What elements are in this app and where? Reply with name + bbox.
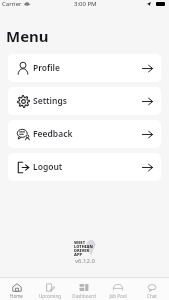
- button[interactable]: Profile: [8, 54, 161, 82]
- staticText: Home: [10, 293, 23, 299]
- staticText: Profile: [33, 62, 60, 74]
- staticText: LOTHIAN: [74, 244, 93, 248]
- staticText: Menu: [6, 26, 49, 46]
- button[interactable]: Feedback: [8, 120, 161, 148]
- staticText: Chat: [147, 293, 157, 299]
- staticText: Upcoming: [39, 293, 61, 299]
- button[interactable]: Upcoming: [33, 278, 67, 300]
- button[interactable]: Settings: [8, 87, 161, 115]
- staticText: 3:00 PM: [74, 0, 97, 8]
- staticText: Feedback: [33, 128, 73, 140]
- staticText: Job Pool: [109, 293, 127, 299]
- button[interactable]: Dashboard: [67, 278, 101, 300]
- staticText: Logout: [33, 161, 63, 173]
- staticText: Carrier: [2, 0, 22, 8]
- staticText: DRIVER: [74, 248, 90, 252]
- button[interactable]: Home: [0, 278, 33, 300]
- staticText: WEST: [74, 240, 86, 244]
- button[interactable]: Chat: [135, 278, 169, 300]
- staticText: Dashboard: [72, 293, 96, 299]
- button[interactable]: Logout: [8, 153, 161, 181]
- staticText: Settings: [33, 95, 67, 107]
- staticText: APP: [74, 252, 82, 256]
- button[interactable]: Job Pool: [101, 278, 135, 300]
- staticText: v6.12.0: [75, 257, 95, 265]
